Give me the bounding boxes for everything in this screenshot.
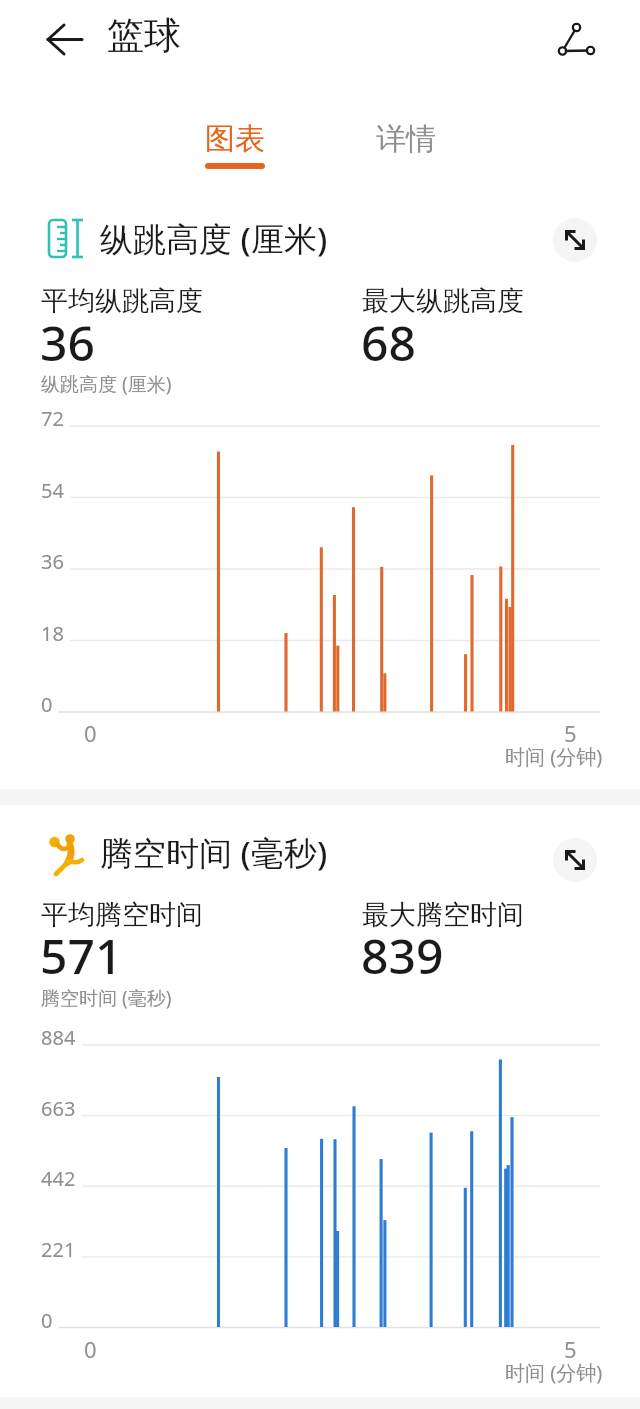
staticText: 腾空时间 (毫秒) [100,830,328,875]
staticText: 最大腾空时间 [362,898,524,932]
button[interactable] [553,218,597,262]
staticText: 571 [40,923,123,988]
staticText: 时间 (分钟) [505,1359,603,1386]
staticText: 36 [41,548,64,575]
staticText: 72 [41,405,64,432]
staticText: 663 [41,1095,76,1122]
staticText: 平均腾空时间 [41,898,203,932]
button[interactable] [553,838,597,882]
staticText: 5 [564,1334,577,1364]
staticText: 平均纵跳高度 [41,284,203,318]
staticText: 839 [361,923,444,988]
staticText: 时间 (分钟) [505,743,603,770]
staticText: 68 [361,310,416,375]
button[interactable] [40,18,88,62]
staticText: 5 [564,718,577,748]
staticText: 纵跳高度 (厘米) [41,371,172,397]
staticText: 221 [41,1236,76,1263]
staticText: 腾空时间 (毫秒) [41,985,172,1011]
staticText: 0 [41,1307,53,1334]
staticText: 纵跳高度 (厘米) [100,216,328,261]
staticText: 0 [84,1334,97,1364]
staticText: 18 [41,620,64,647]
staticText: 详情 [376,120,436,158]
staticText: 0 [84,718,97,748]
button[interactable] [548,12,604,68]
staticText: 图表 [205,120,265,158]
button[interactable]: 详情 [346,112,466,174]
staticText: 0 [41,691,53,718]
staticText: 54 [41,477,64,504]
staticText: 最大纵跳高度 [362,284,524,318]
staticText: 442 [41,1165,76,1192]
button[interactable]: 图表 [175,112,295,174]
staticText: 36 [40,310,95,375]
staticText: 884 [41,1024,76,1051]
staticText: 篮球 [107,12,181,59]
